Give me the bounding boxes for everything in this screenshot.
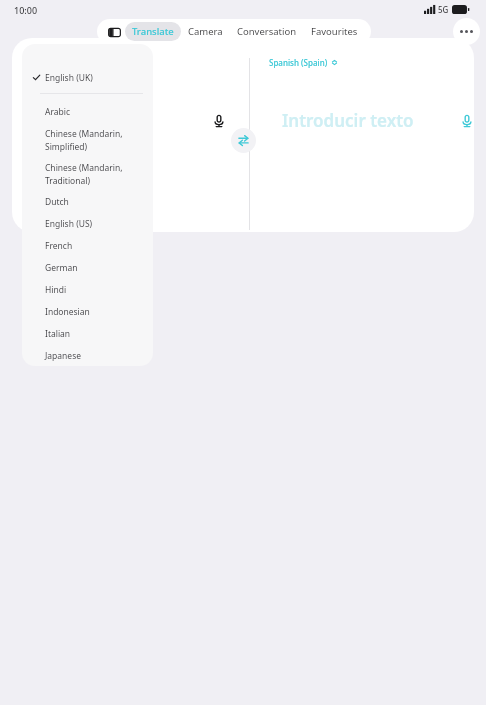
button[interactable]: Dutch xyxy=(22,191,153,213)
staticText: French xyxy=(45,240,73,252)
staticText: German xyxy=(45,262,78,274)
button[interactable]: Chinese (Mandarin, xyxy=(22,123,153,157)
button[interactable]: French xyxy=(22,235,153,257)
staticText: 10:00 xyxy=(14,4,38,16)
button[interactable]: Spanish (Spain) xyxy=(269,57,338,68)
button[interactable]: Conversation xyxy=(230,22,304,41)
staticText: Conversation xyxy=(237,25,297,38)
button[interactable]: Camera xyxy=(181,22,230,41)
button[interactable]: Favourites xyxy=(304,22,365,41)
staticText: Camera xyxy=(188,25,223,38)
staticText: Traditional) xyxy=(45,175,90,187)
staticText: Indonesian xyxy=(45,306,90,318)
staticText: English (UK) xyxy=(45,72,93,84)
staticText: Hindi xyxy=(45,284,67,296)
button[interactable]: English (US) xyxy=(22,213,153,235)
staticText: Chinese (Mandarin, xyxy=(45,128,123,140)
staticText: Arabic xyxy=(45,106,71,118)
staticText: Spanish (Spain) xyxy=(269,57,328,68)
button[interactable]: Swap languages xyxy=(231,128,256,153)
staticText: Chinese (Mandarin, xyxy=(45,162,123,174)
button[interactable]: Japanese xyxy=(22,345,153,366)
button[interactable]: Arabic xyxy=(22,101,153,123)
button[interactable]: Italian xyxy=(22,323,153,345)
button[interactable]: Hindi xyxy=(22,279,153,301)
button[interactable]: German xyxy=(22,257,153,279)
button[interactable]: More options xyxy=(453,18,480,45)
button[interactable]: Toggle sidebar xyxy=(103,21,125,43)
button[interactable]: Speak source language xyxy=(202,104,236,138)
staticText: English (US) xyxy=(45,218,93,230)
staticText: 5G xyxy=(438,4,449,15)
staticText: Japanese xyxy=(45,350,81,362)
staticText: Italian xyxy=(45,328,71,340)
button[interactable]: Speak target language xyxy=(450,104,474,138)
staticText: Introducir texto xyxy=(282,109,414,132)
button[interactable]: Translate xyxy=(125,22,181,41)
button[interactable]: Chinese (Mandarin, xyxy=(22,157,153,191)
button[interactable]: English (UK) xyxy=(22,70,153,85)
staticText: Favourites xyxy=(311,25,358,38)
button[interactable]: Indonesian xyxy=(22,301,153,323)
staticText: Translate xyxy=(132,25,174,38)
staticText: Simplified) xyxy=(45,141,88,153)
staticText: Dutch xyxy=(45,196,69,208)
